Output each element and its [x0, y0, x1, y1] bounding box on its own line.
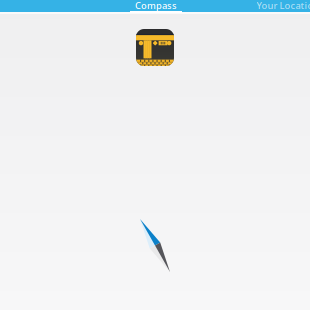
staticText: Your Location [256, 0, 310, 12]
button[interactable]: Compass [90, 0, 222, 13]
staticText: Compass [135, 0, 177, 12]
button[interactable]: Your Location [222, 0, 310, 13]
